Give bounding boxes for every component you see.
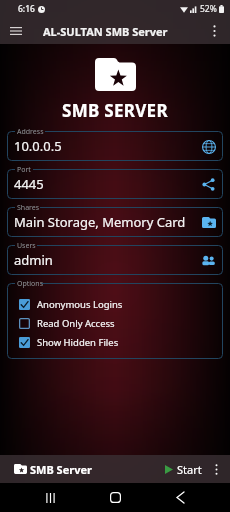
staticText: AL-SULTAN SMB Server xyxy=(43,24,168,39)
button[interactable]: More options xyxy=(204,21,224,41)
staticText: 10.0.0.5 xyxy=(14,137,62,155)
staticText: Anonymous Logins xyxy=(37,298,123,311)
staticText: Start xyxy=(177,462,202,477)
button[interactable]: Home xyxy=(100,483,130,512)
button[interactable]: Navigation menu xyxy=(5,21,26,42)
staticText: 6:16 xyxy=(18,3,35,15)
button[interactable]: Back xyxy=(165,483,195,512)
button[interactable]: Network address xyxy=(199,137,218,156)
staticText: 52% xyxy=(200,3,217,15)
button[interactable]: Read Only Access xyxy=(19,314,223,333)
button[interactable]: Users xyxy=(199,251,218,270)
button[interactable]: Users xyxy=(7,241,223,275)
button[interactable]: Anonymous Logins xyxy=(19,295,223,314)
button[interactable]: Recent apps xyxy=(35,483,65,512)
button[interactable]: Show Hidden Files xyxy=(19,333,223,352)
staticText: Show Hidden Files xyxy=(37,336,119,349)
staticText: SMB SERVER xyxy=(62,99,168,122)
staticText: Main Storage, Memory Card xyxy=(14,213,186,231)
button[interactable]: Choose shares xyxy=(199,213,218,232)
button[interactable]: More options xyxy=(208,461,224,477)
button[interactable]: Port xyxy=(7,165,223,199)
staticText: SMB Server xyxy=(30,462,92,477)
staticText: Users xyxy=(17,241,36,251)
button[interactable]: Address xyxy=(7,127,223,161)
staticText: Shares xyxy=(17,203,40,213)
staticText: Address xyxy=(17,127,44,137)
staticText: Options xyxy=(17,279,44,289)
staticText: 4445 xyxy=(14,175,44,193)
staticText: Read Only Access xyxy=(37,317,115,330)
button[interactable]: Shares xyxy=(7,203,223,237)
staticText: admin xyxy=(14,251,53,269)
button[interactable]: Share xyxy=(199,175,218,194)
button[interactable]: Start xyxy=(162,462,205,477)
staticText: Port xyxy=(17,165,31,175)
